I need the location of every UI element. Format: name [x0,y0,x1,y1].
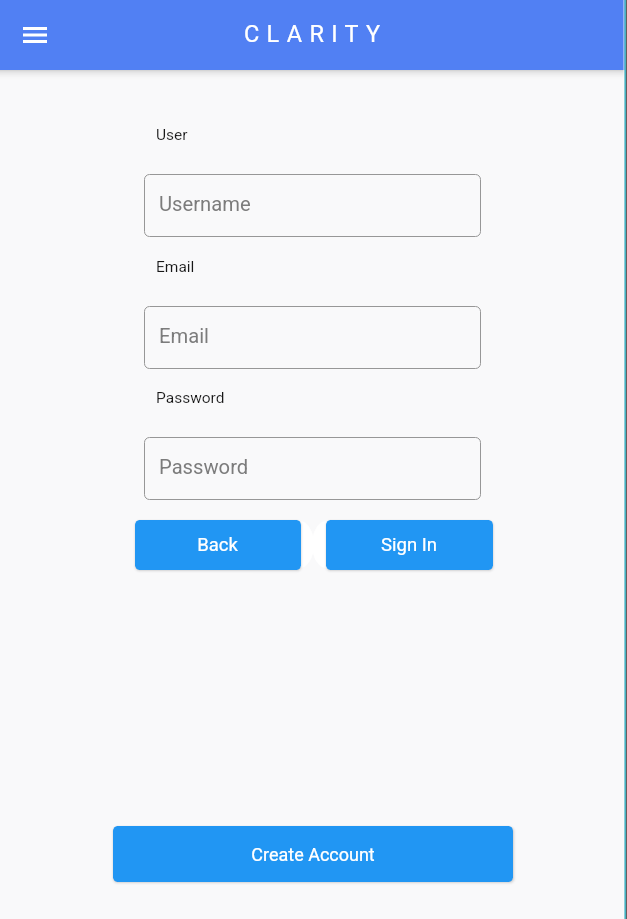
staticText: Username [159,192,251,216]
button[interactable]: Sign In [326,520,493,570]
staticText: Password [156,389,225,407]
staticText: Password [159,455,249,479]
button[interactable]: Create Account [113,826,513,882]
staticText: CLARITY [244,20,388,48]
button[interactable]: Password field [144,437,481,500]
staticText: Back [197,534,238,556]
staticText: User [156,126,188,144]
staticText: Create Account [251,844,375,865]
button[interactable]: Menu [11,11,59,59]
button[interactable]: Username field [144,174,481,237]
staticText: Sign In [381,534,437,556]
button[interactable]: Back [135,520,301,570]
staticText: Email [159,324,209,348]
staticText: Email [156,258,195,276]
button[interactable]: Email field [144,306,481,369]
